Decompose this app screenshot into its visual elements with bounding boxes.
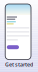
button[interactable]: Primary action [5, 4, 17, 8]
staticText: Get started [5, 61, 33, 68]
button[interactable]: Get started [0, 61, 38, 67]
